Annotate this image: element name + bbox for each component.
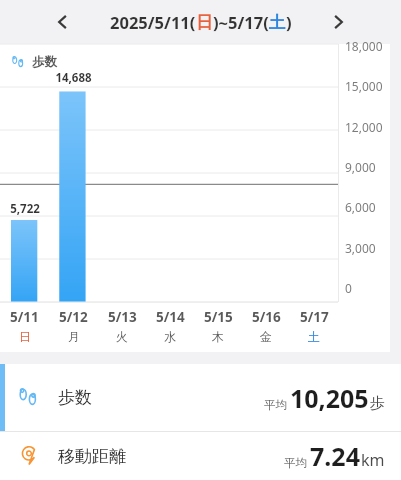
staticText: 平均	[284, 456, 307, 470]
staticText: 5/11	[10, 308, 39, 326]
staticText: 15,000	[345, 78, 383, 94]
button[interactable]: Steps	[0, 364, 401, 431]
staticText: km	[361, 449, 385, 471]
staticText: 歩数	[58, 387, 92, 408]
staticText: 18,000	[345, 38, 383, 54]
other: Steps	[18, 387, 40, 409]
staticText: 9,000	[345, 159, 376, 175]
staticText: 金	[260, 329, 272, 344]
other: Distance	[18, 445, 40, 467]
staticText: 5/13	[108, 308, 137, 326]
staticText: 2025/5/11(	[110, 11, 196, 33]
staticText: 0	[345, 280, 352, 296]
staticText: 月	[68, 329, 80, 344]
staticText: 5/15	[204, 308, 233, 326]
staticText: )	[286, 11, 292, 33]
staticText: 平均	[264, 398, 287, 412]
staticText: 5/12	[59, 308, 88, 326]
staticText: 水	[164, 329, 176, 344]
staticText: 歩	[370, 394, 385, 413]
button[interactable]: Previous week	[48, 7, 78, 37]
staticText: )~5/17(	[213, 11, 269, 33]
staticText: 5/17	[300, 308, 329, 326]
staticText: 移動距離	[58, 446, 126, 467]
staticText: 土	[269, 12, 286, 33]
staticText: 日	[196, 12, 213, 33]
staticText: 3,000	[345, 240, 376, 256]
button[interactable]: Distance	[0, 432, 401, 480]
staticText: 10,205	[290, 381, 369, 415]
staticText: 木	[212, 329, 224, 344]
staticText: 5/16	[252, 308, 281, 326]
staticText: 火	[116, 329, 128, 344]
button[interactable]: Next week	[323, 7, 353, 37]
staticText: 歩数	[32, 54, 57, 70]
staticText: 14,688	[55, 70, 92, 86]
staticText: 7.24	[310, 439, 360, 473]
staticText: 土	[308, 329, 320, 344]
staticText: 5/14	[156, 308, 185, 326]
staticText: 12,000	[345, 119, 383, 135]
staticText: 6,000	[345, 199, 376, 215]
staticText: 5,722	[10, 201, 40, 217]
staticText: 日	[19, 329, 31, 344]
